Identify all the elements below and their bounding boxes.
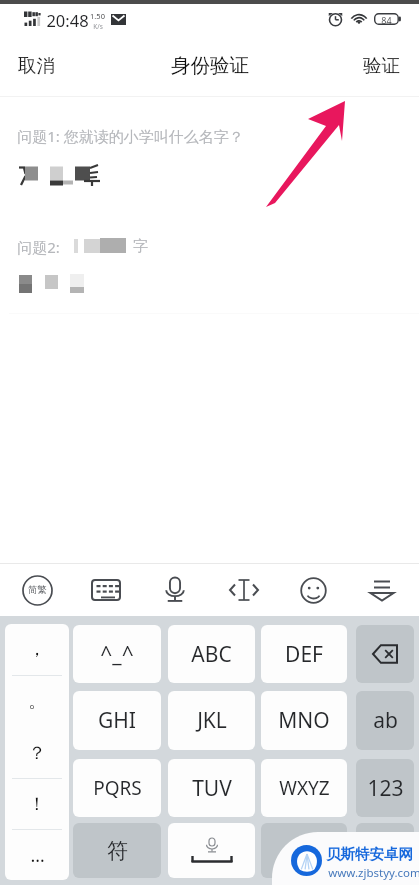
staticText: ？ <box>28 742 46 765</box>
staticText: 符 <box>107 838 128 864</box>
button[interactable]: ^_^ <box>73 625 161 683</box>
staticText: 简繁 <box>28 584 47 596</box>
button[interactable]: 符 <box>73 823 161 878</box>
button[interactable]: ABC <box>168 625 255 683</box>
button[interactable]: 简繁切换 <box>14 567 60 613</box>
button[interactable]: ！ <box>5 779 69 829</box>
button[interactable] <box>356 823 414 878</box>
staticText: TUV <box>192 774 232 803</box>
staticText: 20:48 <box>46 9 89 31</box>
button[interactable]: … <box>5 830 69 880</box>
staticText: ABC <box>191 640 232 669</box>
button[interactable]: PQRS <box>73 759 161 817</box>
staticText: 贝斯特安卓网 <box>326 845 413 863</box>
staticText: 问题1: 您就读的小学叫什么名字？ <box>17 126 244 146</box>
staticText: 问题2: <box>17 237 60 257</box>
button[interactable]: 。 <box>5 676 69 727</box>
button[interactable]: DEF <box>261 625 347 683</box>
staticText: … <box>30 843 45 868</box>
staticText: 1.50 <box>90 11 105 21</box>
staticText: 身份验证 <box>171 53 249 78</box>
button[interactable]: JKL <box>168 691 255 750</box>
staticText: 字 <box>133 237 148 256</box>
staticText: ！ <box>28 793 46 816</box>
staticText: ， <box>28 638 46 661</box>
staticText: JKL <box>197 706 227 735</box>
button[interactable]: ， <box>5 624 69 675</box>
staticText: K/s <box>93 22 103 31</box>
staticText: 取消 <box>18 54 55 77</box>
button[interactable]: Move cursor <box>221 567 267 613</box>
staticText: 123 <box>367 774 404 803</box>
button[interactable]: 验证 <box>339 40 419 91</box>
button[interactable]: GHI <box>73 691 161 750</box>
button[interactable]: Emoji <box>290 567 336 613</box>
staticText: www.zjbstyy.com <box>328 865 419 881</box>
button[interactable]: Space <box>168 823 255 878</box>
button[interactable]: MNO <box>261 691 347 750</box>
staticText: 84 <box>381 14 392 26</box>
button[interactable] <box>261 823 347 878</box>
other: Space <box>190 837 234 865</box>
button[interactable]: ab <box>356 691 414 750</box>
button[interactable]: Delete <box>356 625 414 683</box>
staticText: 验证 <box>363 54 400 77</box>
staticText: WXYZ <box>279 775 330 801</box>
button[interactable]: 取消 <box>0 40 79 91</box>
button[interactable]: WXYZ <box>261 759 347 817</box>
staticText: ^_^ <box>100 640 134 669</box>
other: Delete <box>372 644 399 664</box>
staticText: MNO <box>278 706 330 735</box>
staticText: GHI <box>98 706 136 735</box>
staticText: 。 <box>28 690 46 713</box>
button[interactable]: 123 <box>356 759 414 817</box>
staticText: PQRS <box>93 775 142 801</box>
staticText: DEF <box>285 640 323 669</box>
button[interactable]: Keyboard <box>83 567 129 613</box>
button[interactable]: Hide keyboard <box>359 567 405 613</box>
button[interactable]: TUV <box>168 759 255 817</box>
button[interactable]: Voice input <box>152 567 198 613</box>
button[interactable]: ？ <box>5 728 69 778</box>
staticText: ab <box>373 706 398 735</box>
